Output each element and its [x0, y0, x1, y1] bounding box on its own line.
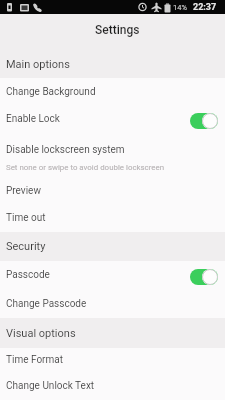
staticText: Disable lockscreen system: [6, 144, 125, 156]
staticText: Time Format: [6, 354, 63, 366]
staticText: 14%: [173, 3, 187, 12]
staticText: Change Background: [6, 86, 96, 98]
staticText: Main options: [6, 58, 70, 71]
button[interactable]: Change Unlock Text: [0, 372, 225, 400]
button[interactable]: Preview: [0, 178, 225, 204]
button[interactable]: Enable Lock: [0, 105, 225, 133]
button[interactable]: Change Background: [0, 78, 225, 105]
button[interactable]: Time out: [0, 204, 225, 232]
staticText: Change Unlock Text: [6, 380, 95, 392]
staticText: Passcode: [6, 269, 50, 281]
staticText: Set none or swipe to avoid double locksc…: [6, 163, 165, 172]
button[interactable]: Time Format: [0, 348, 225, 372]
staticText: Change Passcode: [6, 298, 87, 310]
button[interactable]: Change Passcode: [0, 289, 225, 318]
staticText: Enable Lock: [6, 113, 60, 125]
staticText: Preview: [6, 185, 41, 197]
staticText: Security: [6, 240, 46, 253]
staticText: Settings: [95, 23, 140, 37]
button[interactable]: Passcode: [0, 261, 225, 289]
staticText: Time out: [6, 212, 46, 224]
staticText: Visual options: [6, 327, 76, 340]
staticText: 22:37: [193, 2, 217, 13]
button[interactable]: Disable lockscreen system: [0, 133, 225, 178]
